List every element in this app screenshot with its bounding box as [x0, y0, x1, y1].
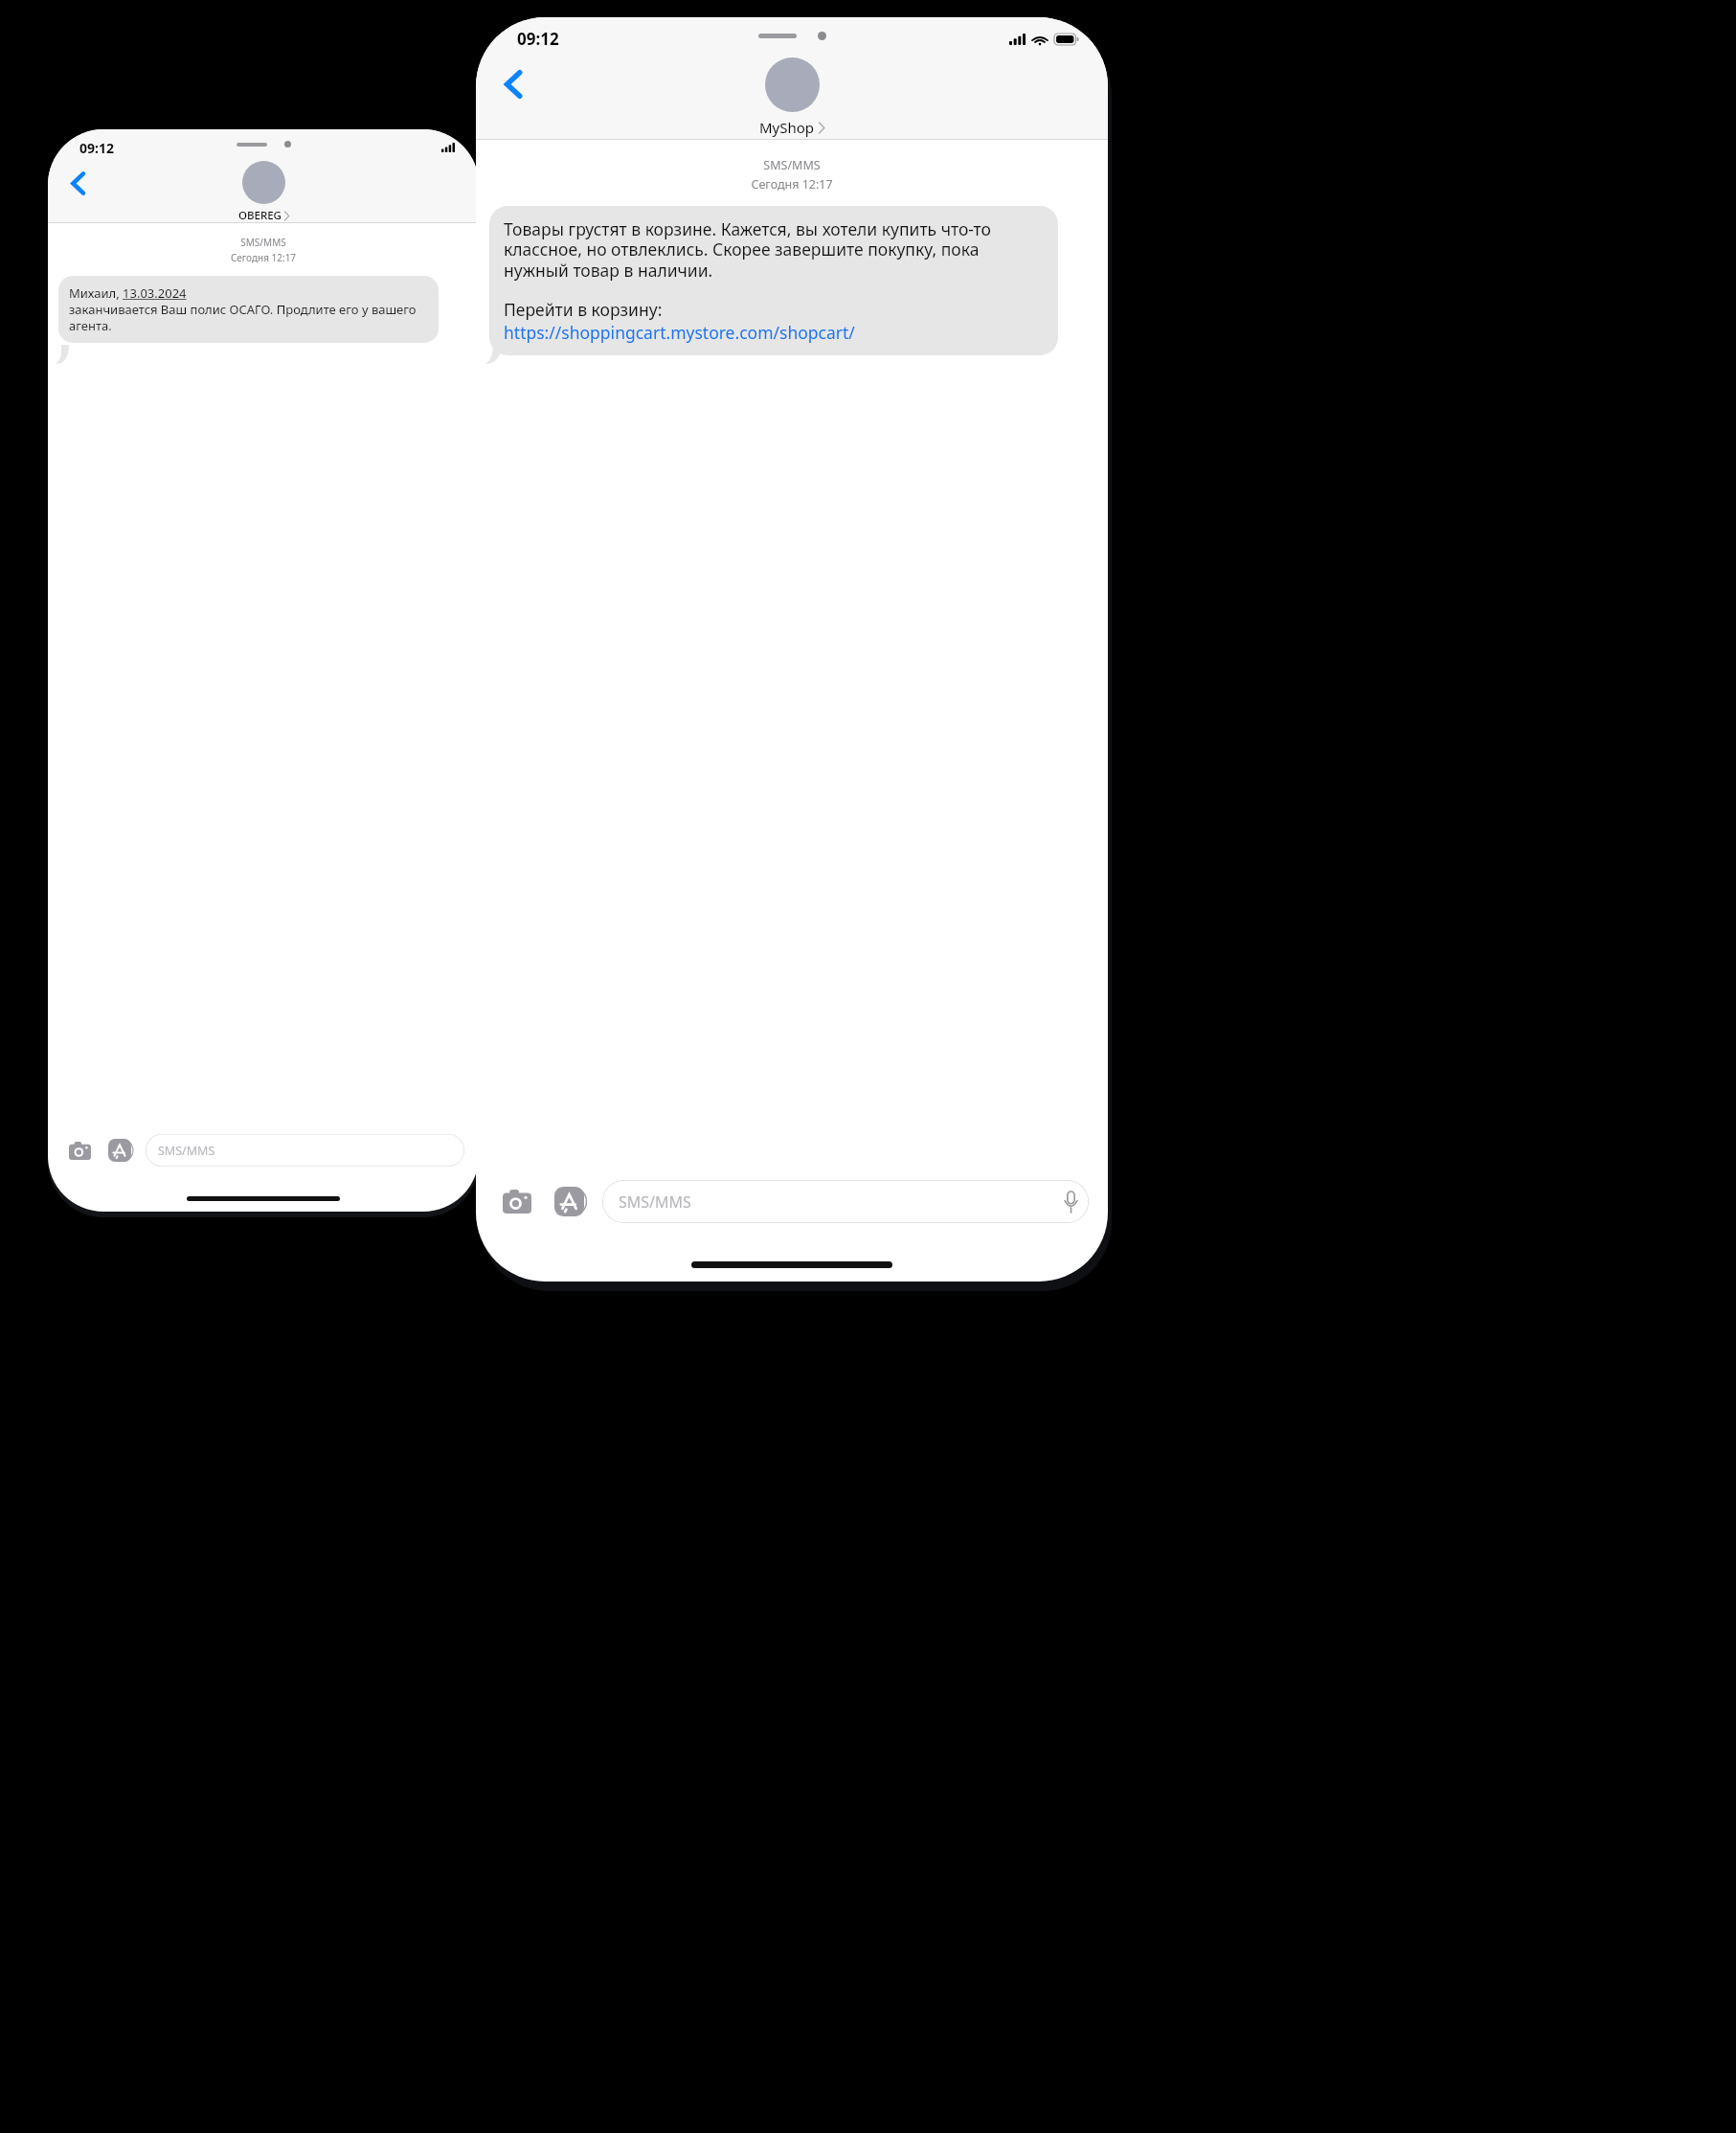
staticText: Сегодня 12:17: [476, 176, 1108, 193]
staticText: SMS/MMS: [48, 236, 479, 249]
staticText: Михаил, 13.03.2024 заканчивается Ваш пол…: [69, 284, 428, 334]
button[interactable]: App Store: [547, 1179, 591, 1223]
button[interactable]: https://shoppingcart.mystore.com/shopcar…: [504, 321, 855, 344]
button[interactable]: OBEREG: [238, 161, 289, 223]
button[interactable]: MyShop: [759, 57, 824, 137]
button[interactable]: Михаил, 13.03.2024 заканчивается Ваш пол…: [58, 276, 439, 343]
staticText: 09:12: [517, 28, 559, 50]
staticText: 09:12: [79, 139, 114, 157]
button[interactable]: Товары грустят в корзине. Кажется, вы хо…: [489, 206, 1058, 355]
button[interactable]: Camera: [495, 1179, 539, 1223]
staticText: SMS/MMS: [476, 157, 1108, 173]
staticText: OBEREG: [238, 208, 282, 223]
staticText: SMS/MMS: [619, 1191, 691, 1213]
staticText: SMS/MMS: [158, 1143, 215, 1159]
button[interactable]: App Store: [102, 1133, 137, 1168]
button[interactable]: Back: [492, 63, 534, 105]
staticText: Товары грустят в корзине. Кажется, вы хо…: [504, 217, 1044, 282]
button[interactable]: Back: [59, 165, 96, 201]
staticText: Перейти в корзину:: [504, 298, 663, 321]
button[interactable]: SMS/MMS: [602, 1180, 1089, 1223]
button[interactable]: Camera: [62, 1133, 97, 1168]
staticText: Сегодня 12:17: [48, 251, 479, 264]
staticText: MyShop: [759, 118, 815, 137]
button[interactable]: SMS/MMS: [146, 1134, 464, 1167]
